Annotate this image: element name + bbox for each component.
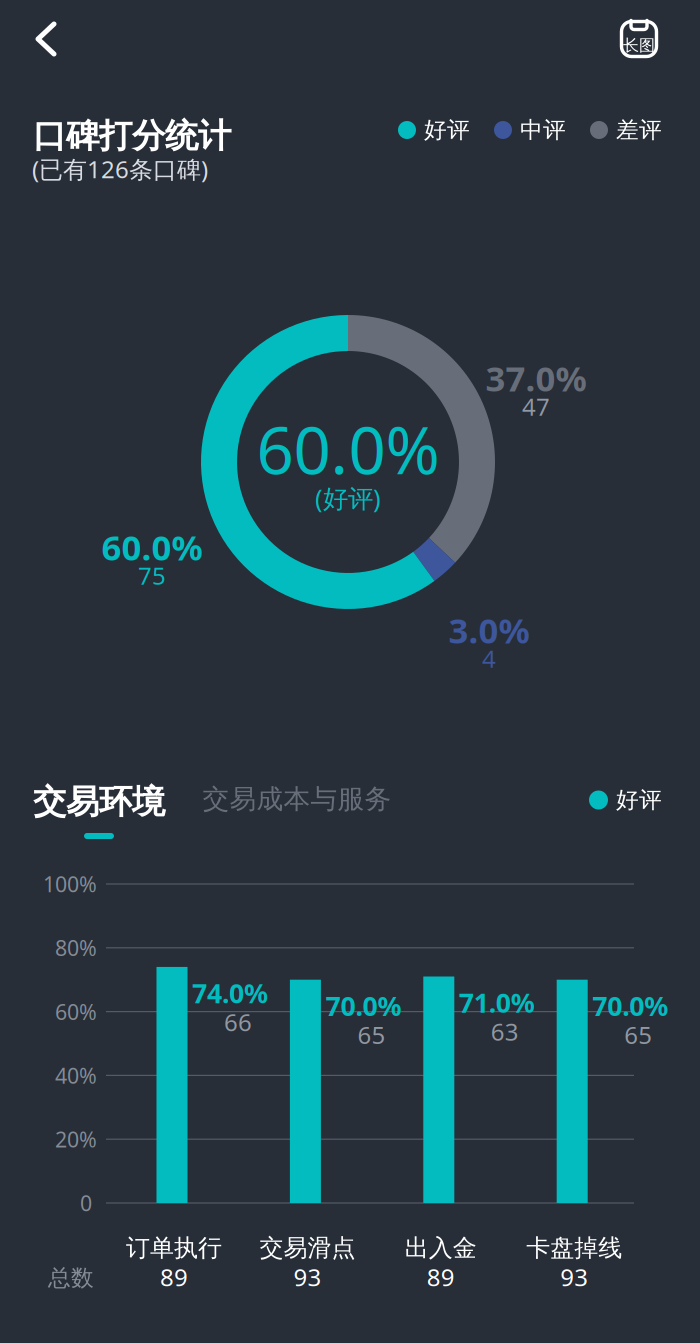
- staticText: 交易滑点: [259, 1233, 355, 1263]
- staticText: 93: [560, 1261, 588, 1293]
- staticText: 89: [427, 1261, 455, 1293]
- button[interactable]: 交易成本与服务: [187, 776, 407, 822]
- staticText: 70.0%: [325, 988, 401, 1023]
- staticText: 71.0%: [459, 985, 535, 1020]
- staticText: 口碑打分统计: [33, 115, 231, 156]
- button[interactable]: 交易环境: [19, 768, 179, 864]
- staticText: 65: [624, 1019, 652, 1051]
- staticText: 74.0%: [192, 975, 268, 1011]
- staticText: 66: [224, 1006, 252, 1038]
- staticText: 好评: [616, 786, 662, 814]
- staticText: 93: [293, 1261, 321, 1293]
- staticText: 40%: [55, 1061, 97, 1089]
- staticText: 订单执行: [126, 1233, 222, 1263]
- staticText: 4: [482, 643, 496, 674]
- button[interactable]: 长图: [607, 7, 671, 71]
- staticText: 60.0%: [101, 524, 202, 570]
- staticText: 交易成本与服务: [202, 783, 391, 815]
- button[interactable]: 好评: [572, 780, 662, 820]
- staticText: 20%: [55, 1125, 97, 1153]
- staticText: 80%: [55, 934, 97, 962]
- staticText: 出入金: [405, 1233, 477, 1263]
- staticText: 75: [138, 560, 166, 591]
- staticText: 中评: [520, 116, 566, 144]
- staticText: 卡盘掉线: [526, 1233, 622, 1263]
- staticText: 3.0%: [448, 607, 529, 653]
- staticText: 总数: [48, 1264, 94, 1292]
- staticText: 0: [80, 1189, 92, 1217]
- staticText: 65: [357, 1019, 385, 1051]
- staticText: 差评: [616, 116, 662, 144]
- staticText: 长图: [623, 35, 655, 55]
- staticText: (好评): [315, 481, 381, 515]
- staticText: 37.0%: [485, 355, 586, 401]
- staticText: 89: [160, 1261, 188, 1293]
- staticText: 63: [491, 1016, 519, 1047]
- staticText: 交易环境: [33, 781, 165, 822]
- staticText: (已有126条口碑): [32, 153, 208, 185]
- button[interactable]: 返回: [14, 0, 78, 78]
- staticText: 70.0%: [592, 988, 668, 1023]
- staticText: 好评: [424, 116, 470, 144]
- staticText: 60%: [55, 997, 97, 1026]
- staticText: 60.0%: [256, 406, 439, 492]
- staticText: 100%: [43, 870, 97, 898]
- staticText: 47: [522, 391, 550, 422]
